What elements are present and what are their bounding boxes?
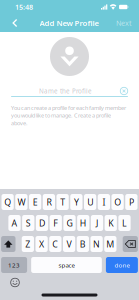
button[interactable]: Next xyxy=(114,14,134,32)
button[interactable]: Emoji keyboard xyxy=(5,276,25,289)
staticText: K xyxy=(108,217,113,229)
button[interactable]: U xyxy=(84,194,96,210)
button[interactable]: L xyxy=(118,215,131,231)
button[interactable]: Clear text xyxy=(120,87,128,95)
staticText: Q xyxy=(4,196,11,208)
button[interactable]: O xyxy=(111,194,124,210)
staticText: 123 xyxy=(8,261,20,269)
button[interactable]: B xyxy=(77,236,89,252)
button[interactable]: Shift xyxy=(1,236,15,252)
button[interactable]: H xyxy=(77,215,89,231)
staticText: L xyxy=(122,217,127,229)
staticText: E xyxy=(33,196,38,208)
staticText: D xyxy=(39,217,45,229)
staticText: Name the Profile xyxy=(39,87,92,95)
staticText: space xyxy=(58,261,74,269)
button[interactable]: I xyxy=(98,194,110,210)
staticText: Next xyxy=(116,18,132,28)
button[interactable]: V xyxy=(63,236,75,252)
button[interactable]: G xyxy=(63,215,76,231)
button[interactable]: W xyxy=(15,194,27,210)
staticText: A xyxy=(11,217,17,229)
button[interactable]: K xyxy=(105,215,117,231)
button[interactable]: P xyxy=(125,194,137,210)
button[interactable]: Y xyxy=(70,194,82,210)
staticText: F xyxy=(53,217,58,229)
button[interactable]: X xyxy=(35,236,48,252)
button[interactable]: E xyxy=(29,194,41,210)
staticText: V xyxy=(67,238,72,250)
button[interactable]: R xyxy=(43,194,55,210)
button[interactable]: space xyxy=(31,257,102,273)
staticText: C xyxy=(52,238,58,250)
staticText: T xyxy=(60,196,65,208)
staticText: B xyxy=(80,238,86,250)
staticText: O xyxy=(114,196,121,208)
staticText: N xyxy=(93,238,100,250)
staticText: M xyxy=(106,238,114,250)
button[interactable]: Z xyxy=(22,236,34,252)
staticText: Add New Profile xyxy=(39,18,99,28)
button[interactable]: J xyxy=(91,215,103,231)
staticText: done xyxy=(114,261,129,269)
staticText: 15:48 xyxy=(15,2,33,12)
button[interactable]: N xyxy=(90,236,103,252)
staticText: U xyxy=(87,196,93,208)
button[interactable]: M xyxy=(104,236,116,252)
button[interactable]: A xyxy=(8,215,21,231)
button[interactable]: D xyxy=(36,215,48,231)
staticText: X xyxy=(39,238,44,250)
staticText: H xyxy=(80,217,87,229)
button[interactable]: Numbers xyxy=(1,257,27,273)
staticText: S xyxy=(26,217,31,229)
button[interactable]: done xyxy=(106,257,138,273)
button[interactable]: F xyxy=(50,215,62,231)
button[interactable]: Delete xyxy=(123,236,138,252)
button[interactable]: C xyxy=(49,236,61,252)
staticText: W xyxy=(17,196,25,208)
staticText: J xyxy=(96,217,98,229)
staticText: R xyxy=(46,196,51,208)
staticText: Y xyxy=(74,196,79,208)
staticText: I xyxy=(102,196,105,208)
staticText: Z xyxy=(25,238,30,250)
staticText: G xyxy=(66,217,72,229)
staticText: You can create a profile for each family… xyxy=(11,104,126,127)
button[interactable]: Q xyxy=(1,194,14,210)
button[interactable]: Back xyxy=(5,14,25,32)
button[interactable]: T xyxy=(56,194,69,210)
button[interactable]: S xyxy=(22,215,34,231)
staticText: P xyxy=(129,196,134,208)
